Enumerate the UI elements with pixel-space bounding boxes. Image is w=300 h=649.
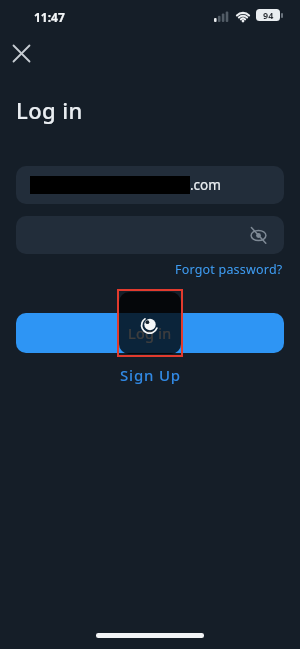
staticText: Log in	[16, 95, 83, 125]
button[interactable]: Sign Up	[120, 365, 181, 385]
staticText: 94	[263, 9, 274, 21]
staticText: .com	[190, 176, 221, 194]
button[interactable]: Forgot password?	[175, 261, 283, 278]
button[interactable]: .com	[16, 166, 284, 204]
button[interactable]	[16, 216, 284, 254]
staticText: 11:47	[34, 9, 65, 25]
button[interactable]	[10, 41, 34, 65]
button[interactable]: Log in	[16, 313, 284, 353]
staticText: Log in	[128, 323, 172, 343]
